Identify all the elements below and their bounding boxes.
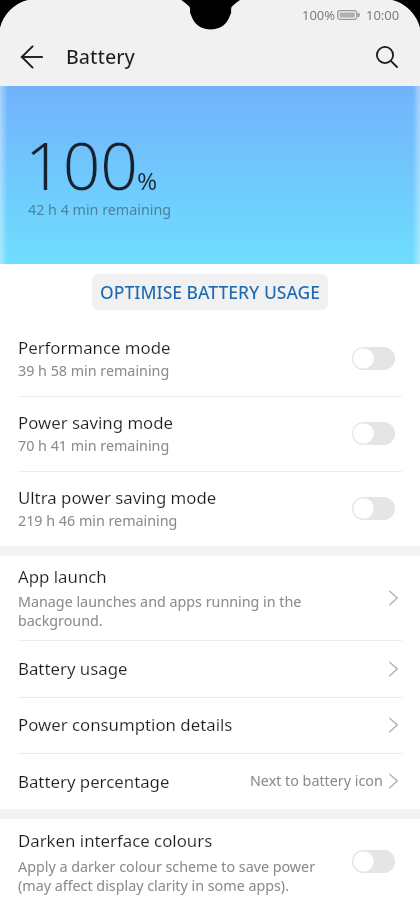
staticText: Manage launches and apps running in the [18, 592, 302, 611]
button[interactable] [0, 640, 420, 697]
staticText: 70 h 41 min remaining [18, 436, 170, 455]
staticText: Next to battery icon [250, 771, 383, 790]
staticText: 39 h 58 min remaining [18, 361, 170, 380]
staticText: Power saving mode [18, 411, 174, 434]
staticText: Darken interface colours [18, 829, 213, 852]
staticText: 10:00 [366, 6, 400, 24]
button[interactable] [0, 697, 420, 753]
button[interactable]: Toggle [352, 497, 395, 520]
staticText: (may affect display clarity in some apps… [18, 876, 289, 895]
staticText: OPTIMISE BATTERY USAGE [100, 280, 321, 304]
staticText: % [137, 164, 158, 197]
staticText: Battery usage [18, 657, 128, 680]
staticText: Battery [66, 43, 135, 70]
button[interactable] [0, 819, 420, 910]
button[interactable]: Toggle [352, 850, 395, 873]
button[interactable]: Search [357, 29, 413, 85]
staticText: 100% [302, 6, 336, 24]
staticText: App launch [18, 565, 107, 588]
staticText: 42 h 4 min remaining [28, 200, 172, 219]
button[interactable] [0, 753, 420, 809]
staticText: Battery percentage [18, 770, 170, 793]
staticText: Power consumption details [18, 713, 233, 736]
button[interactable] [0, 471, 420, 546]
staticText: Performance mode [18, 336, 171, 359]
button[interactable] [0, 396, 420, 471]
button[interactable]: OPTIMISE BATTERY USAGE [92, 274, 328, 310]
staticText: 100 [25, 119, 139, 209]
button[interactable]: Back [4, 29, 60, 85]
button[interactable]: Toggle [352, 347, 395, 370]
button[interactable] [0, 321, 420, 396]
staticText: Apply a darker colour scheme to save pow… [18, 857, 316, 876]
button[interactable]: Toggle [352, 422, 395, 445]
button[interactable] [0, 556, 420, 641]
staticText: Ultra power saving mode [18, 486, 217, 509]
staticText: 219 h 46 min remaining [18, 511, 178, 530]
staticText: background. [18, 611, 103, 630]
